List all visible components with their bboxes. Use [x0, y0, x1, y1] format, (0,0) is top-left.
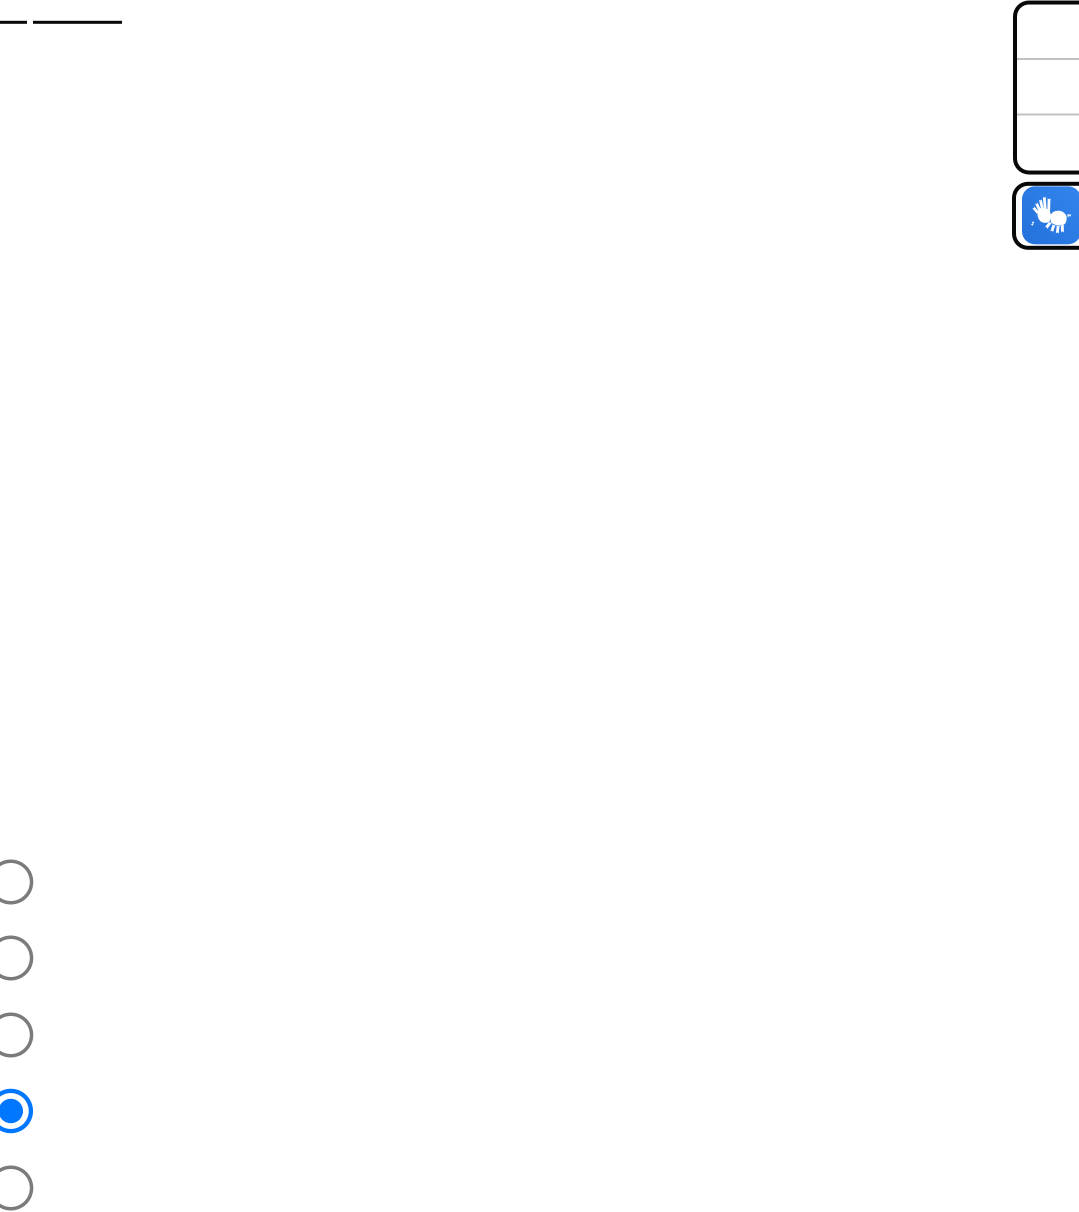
button[interactable]: Settings group: [1015, 2, 1079, 172]
button[interactable]: Back: [0, 21, 27, 24]
button[interactable]: Option 4: [0, 1086, 36, 1136]
button[interactable]: Option 1: [0, 857, 36, 907]
button[interactable]: Option 3: [0, 1010, 36, 1060]
button[interactable]: Option 5: [0, 1163, 36, 1212]
button[interactable]: Sign language app: [1014, 184, 1079, 248]
button[interactable]: Accessibility: [33, 21, 122, 24]
button[interactable]: Option 2: [0, 933, 36, 983]
